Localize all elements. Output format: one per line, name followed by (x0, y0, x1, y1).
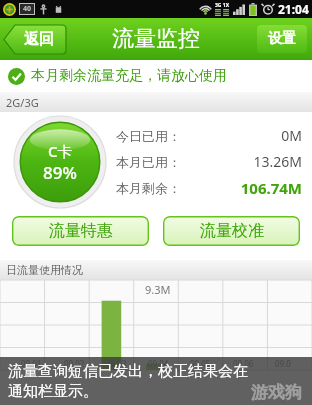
staticText: 本月剩余流量充足，请放心使用 (31, 67, 227, 85)
staticText: 2G/3G (6, 95, 39, 110)
staticText: 09.01 (21, 358, 42, 369)
staticText: 09.0 (275, 358, 291, 369)
button[interactable]: 设置 (257, 25, 307, 53)
staticText: 返回 (24, 30, 54, 49)
staticText: 流量校准 (200, 221, 264, 241)
staticText: 今日已用： (116, 128, 181, 144)
staticText: 本月已用： (116, 154, 181, 170)
staticText: 09.02 (64, 358, 85, 369)
staticText: 游戏狗 (251, 382, 302, 403)
button[interactable]: 返回 (4, 25, 66, 54)
staticText: 日流量使用情况 (6, 263, 83, 277)
staticText: 流量监控 (112, 25, 200, 53)
staticText: 0M (181, 126, 302, 145)
staticText: 13.26M (181, 152, 302, 171)
staticText: 09.06 (233, 358, 254, 369)
staticText: 40 (23, 4, 32, 14)
button[interactable]: 流量校准 (163, 216, 300, 246)
staticText: 流量查询短信已发出，校正结果会在 (8, 362, 248, 381)
staticText: 106.74M (181, 178, 302, 198)
staticText: 3G 1X (215, 2, 229, 9)
button[interactable]: 流量特惠 (12, 216, 149, 246)
staticText: 9.3M (145, 282, 171, 297)
staticText: 21:04 (278, 1, 309, 17)
staticText: 本月剩余： (116, 180, 181, 196)
staticText: 流量特惠 (49, 221, 113, 241)
staticText: 设置 (268, 30, 296, 48)
staticText: 09.04 (148, 358, 169, 369)
staticText: C卡 (48, 141, 73, 161)
staticText: 89% (43, 161, 77, 184)
staticText: 通知栏显示。 (8, 382, 98, 401)
staticText: 09.03 (106, 358, 127, 369)
staticText: 09.05 (190, 358, 211, 369)
